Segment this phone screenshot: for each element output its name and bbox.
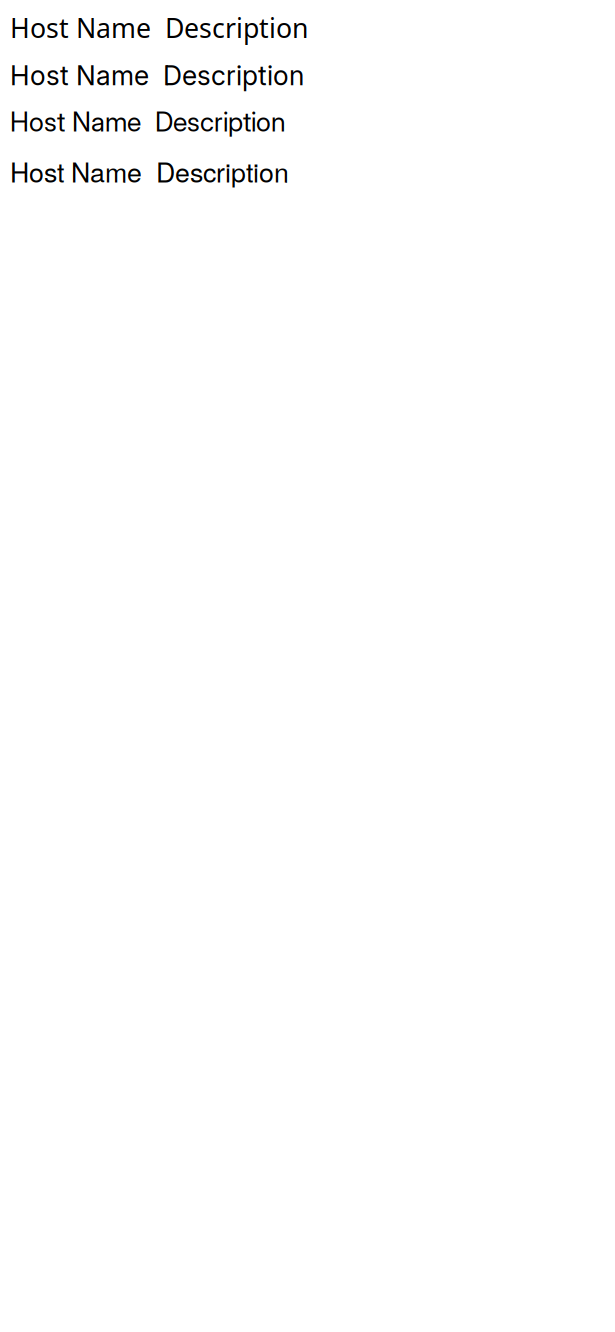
staticText: Host Name Description	[10, 59, 304, 92]
staticText: Host Name Description	[10, 152, 289, 190]
staticText: Host Name Description	[10, 10, 308, 45]
staticText: Host Name Description	[10, 106, 286, 138]
